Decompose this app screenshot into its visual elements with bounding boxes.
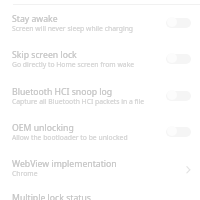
- staticText: Skip screen lock: [12, 49, 77, 61]
- staticText: Multiple lock status: [12, 192, 92, 200]
- staticText: Chrome: [12, 169, 38, 178]
- staticText: Screen will never sleep while charging: [12, 24, 134, 33]
- button[interactable]: Stay awake: [0, 5, 200, 41]
- button[interactable]: Skip screen lock: [0, 41, 200, 77]
- button[interactable]: OEM unlocking: [0, 114, 200, 150]
- button[interactable]: Open WebView implementation: [180, 162, 192, 174]
- staticText: WebView implementation: [12, 158, 117, 170]
- button[interactable]: Multiple lock status: [0, 184, 200, 200]
- button[interactable]: WebView implementation: [0, 150, 200, 186]
- button[interactable]: Toggle OEM unlocking: [166, 127, 191, 137]
- staticText: Allow the bootloader to be unlocked: [12, 133, 128, 142]
- staticText: Capture all Bluetooth HCI packets in a f…: [12, 97, 145, 106]
- button[interactable]: Toggle Stay awake: [166, 18, 191, 28]
- button[interactable]: Bluetooth HCI snoop log: [0, 78, 200, 114]
- staticText: Stay awake: [12, 13, 58, 25]
- staticText: Bluetooth HCI snoop log: [12, 86, 113, 98]
- staticText: OEM unlocking: [12, 122, 74, 134]
- staticText: Go directly to Home screen from wake: [12, 60, 135, 69]
- button[interactable]: Toggle Skip screen lock: [166, 54, 191, 64]
- button[interactable]: Toggle Bluetooth HCI snoop log: [166, 91, 191, 101]
